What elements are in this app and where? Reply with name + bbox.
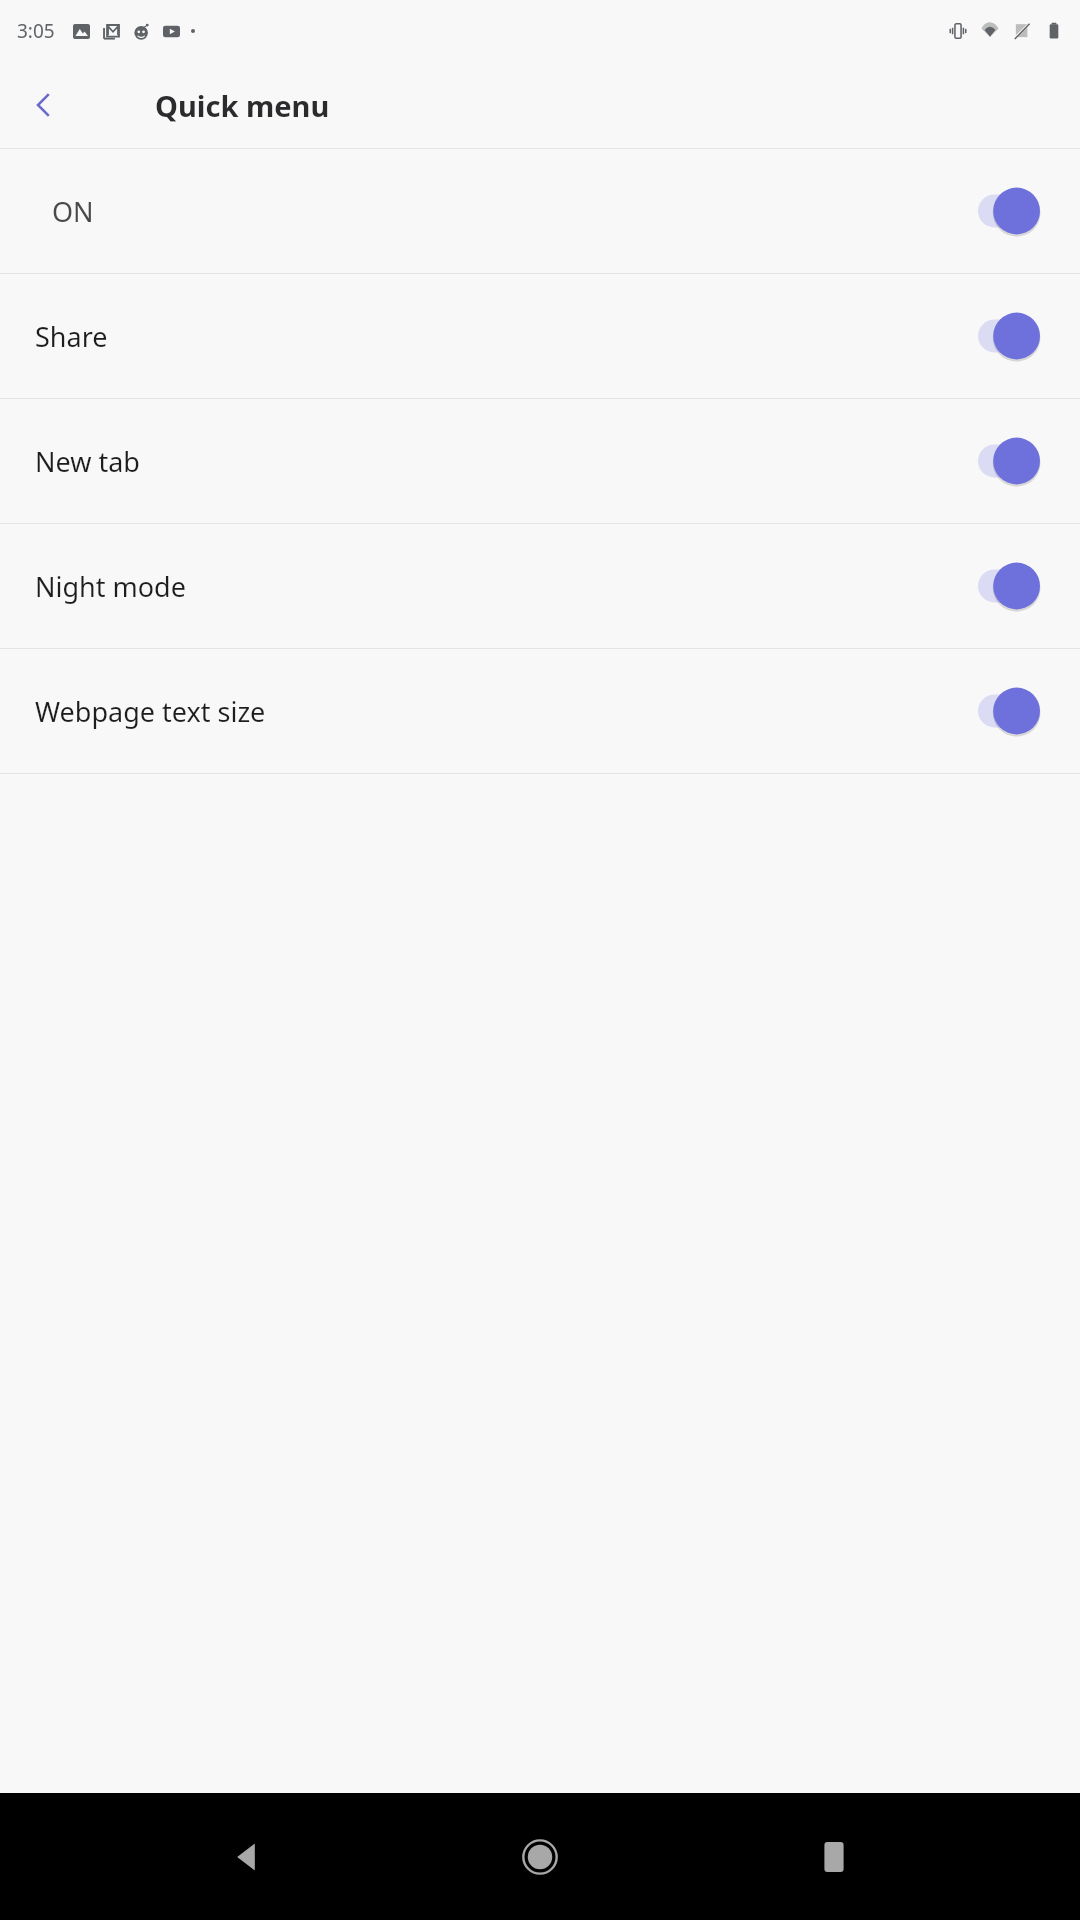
staticText: Night mode xyxy=(35,568,978,605)
button[interactable]: Share xyxy=(0,274,1080,398)
staticText: Webpage text size xyxy=(35,693,978,730)
button[interactable]: Toggle xyxy=(978,185,1040,237)
button[interactable]: New tab xyxy=(0,399,1080,523)
button[interactable]: ON xyxy=(0,149,1080,273)
staticText: Quick menu xyxy=(155,86,330,125)
button[interactable]: Back xyxy=(8,69,80,141)
staticText: New tab xyxy=(35,443,978,480)
staticText: ON xyxy=(52,193,978,230)
button[interactable]: Recent apps xyxy=(786,1809,882,1905)
staticText: Share xyxy=(35,318,978,355)
button[interactable]: Back xyxy=(198,1809,294,1905)
button[interactable]: Webpage text size xyxy=(0,649,1080,773)
staticText: 3:05 xyxy=(17,18,55,44)
button[interactable]: Toggle xyxy=(978,435,1040,487)
button[interactable]: Home xyxy=(492,1809,588,1905)
button[interactable]: Toggle xyxy=(978,560,1040,612)
button[interactable]: Toggle xyxy=(978,310,1040,362)
button[interactable]: Toggle xyxy=(978,685,1040,737)
button[interactable]: Night mode xyxy=(0,524,1080,648)
